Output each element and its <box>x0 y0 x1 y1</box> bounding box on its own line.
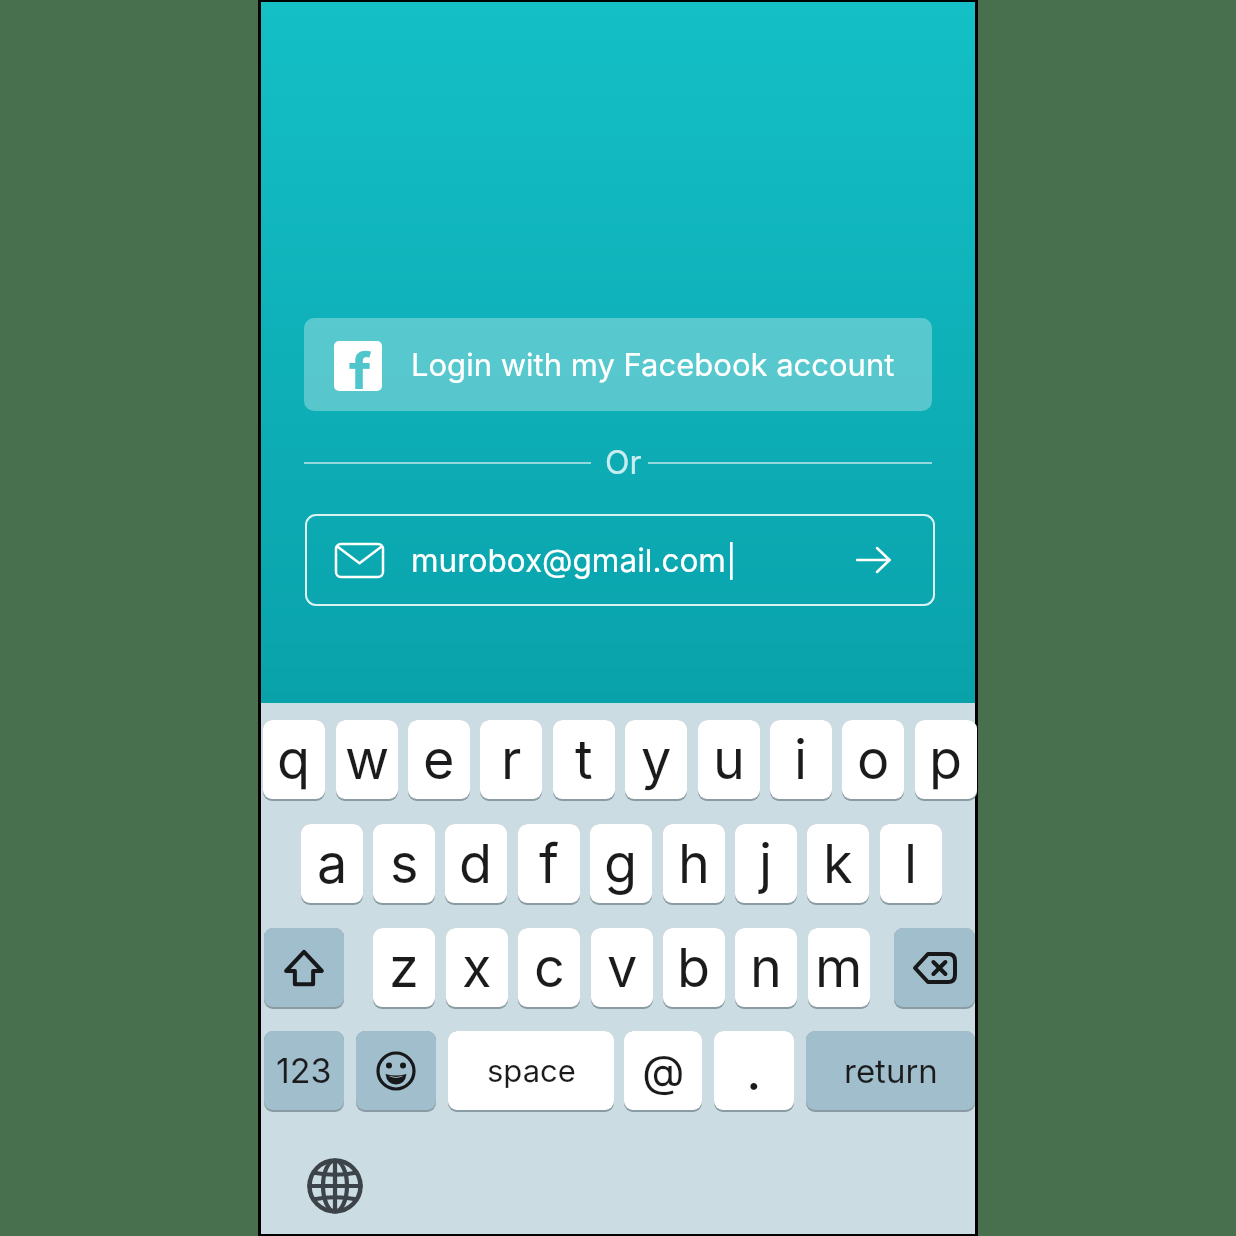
staticText: y <box>641 727 672 792</box>
staticText: j <box>759 831 773 896</box>
staticText: d <box>459 831 493 896</box>
staticText: m <box>815 935 863 1000</box>
staticText: return <box>844 1051 938 1091</box>
button[interactable]: @ <box>624 1031 702 1110</box>
staticText: c <box>534 935 565 1000</box>
button[interactable]: p <box>915 720 977 799</box>
button[interactable]: x <box>446 928 508 1007</box>
staticText: r <box>501 727 522 792</box>
staticText: n <box>750 935 782 1000</box>
staticText: Or <box>605 443 642 482</box>
button[interactable]: l <box>880 824 942 903</box>
button[interactable] <box>356 1031 436 1110</box>
staticText: h <box>678 831 710 896</box>
button[interactable]: s <box>373 824 435 903</box>
button[interactable]: m <box>808 928 870 1007</box>
button[interactable]: d <box>445 824 507 903</box>
button[interactable]: f <box>518 824 580 903</box>
staticText: z <box>389 935 419 1000</box>
button[interactable]: i <box>770 720 832 799</box>
staticText: a <box>317 831 348 896</box>
button[interactable] <box>894 928 975 1007</box>
button[interactable] <box>264 928 344 1007</box>
button[interactable]: y <box>625 720 687 799</box>
button[interactable]: f <box>304 318 932 411</box>
staticText: e <box>423 727 455 792</box>
button[interactable]: g <box>590 824 652 903</box>
button[interactable]: b <box>663 928 725 1007</box>
button[interactable]: t <box>553 720 615 799</box>
button[interactable]: j <box>735 824 797 903</box>
button[interactable]: z <box>373 928 435 1007</box>
button[interactable]: v <box>591 928 653 1007</box>
button[interactable]: e <box>408 720 470 799</box>
staticText: q <box>277 727 311 792</box>
staticText: f <box>539 831 559 896</box>
button[interactable]: u <box>698 720 760 799</box>
button[interactable]: k <box>807 824 869 903</box>
button[interactable]: q <box>263 720 325 799</box>
staticText: space <box>487 1052 576 1090</box>
staticText: v <box>607 935 638 1000</box>
staticText: i <box>794 727 808 792</box>
staticText: p <box>929 727 963 792</box>
staticText: k <box>823 831 853 896</box>
button[interactable]: . <box>714 1031 794 1110</box>
button[interactable]: a <box>301 824 363 903</box>
button[interactable]: n <box>735 928 797 1007</box>
button[interactable]: 123 <box>264 1031 344 1110</box>
staticText: o <box>857 727 890 792</box>
staticText: . <box>746 1038 762 1103</box>
staticText: w <box>345 727 390 792</box>
staticText: u <box>713 727 745 792</box>
staticText: 123 <box>276 1050 332 1091</box>
staticText: g <box>604 831 638 896</box>
button[interactable] <box>307 1158 363 1214</box>
button[interactable]: space <box>448 1031 614 1110</box>
staticText: murobox@gmail.com| <box>411 541 737 579</box>
button[interactable]: return <box>806 1031 975 1110</box>
button[interactable]: w <box>336 720 398 799</box>
button[interactable]: c <box>518 928 580 1007</box>
staticText: l <box>904 831 918 896</box>
button[interactable]: o <box>842 720 904 799</box>
button[interactable]: r <box>480 720 542 799</box>
staticText: f <box>349 341 372 389</box>
staticText: b <box>677 935 711 1000</box>
button[interactable]: murobox@gmail.com| <box>306 515 934 605</box>
staticText: Login with my Facebook account <box>411 346 895 384</box>
button[interactable]: h <box>663 824 725 903</box>
staticText: @ <box>642 1044 685 1097</box>
staticText: s <box>390 831 419 896</box>
staticText: t <box>575 727 593 792</box>
staticText: x <box>462 935 492 1000</box>
